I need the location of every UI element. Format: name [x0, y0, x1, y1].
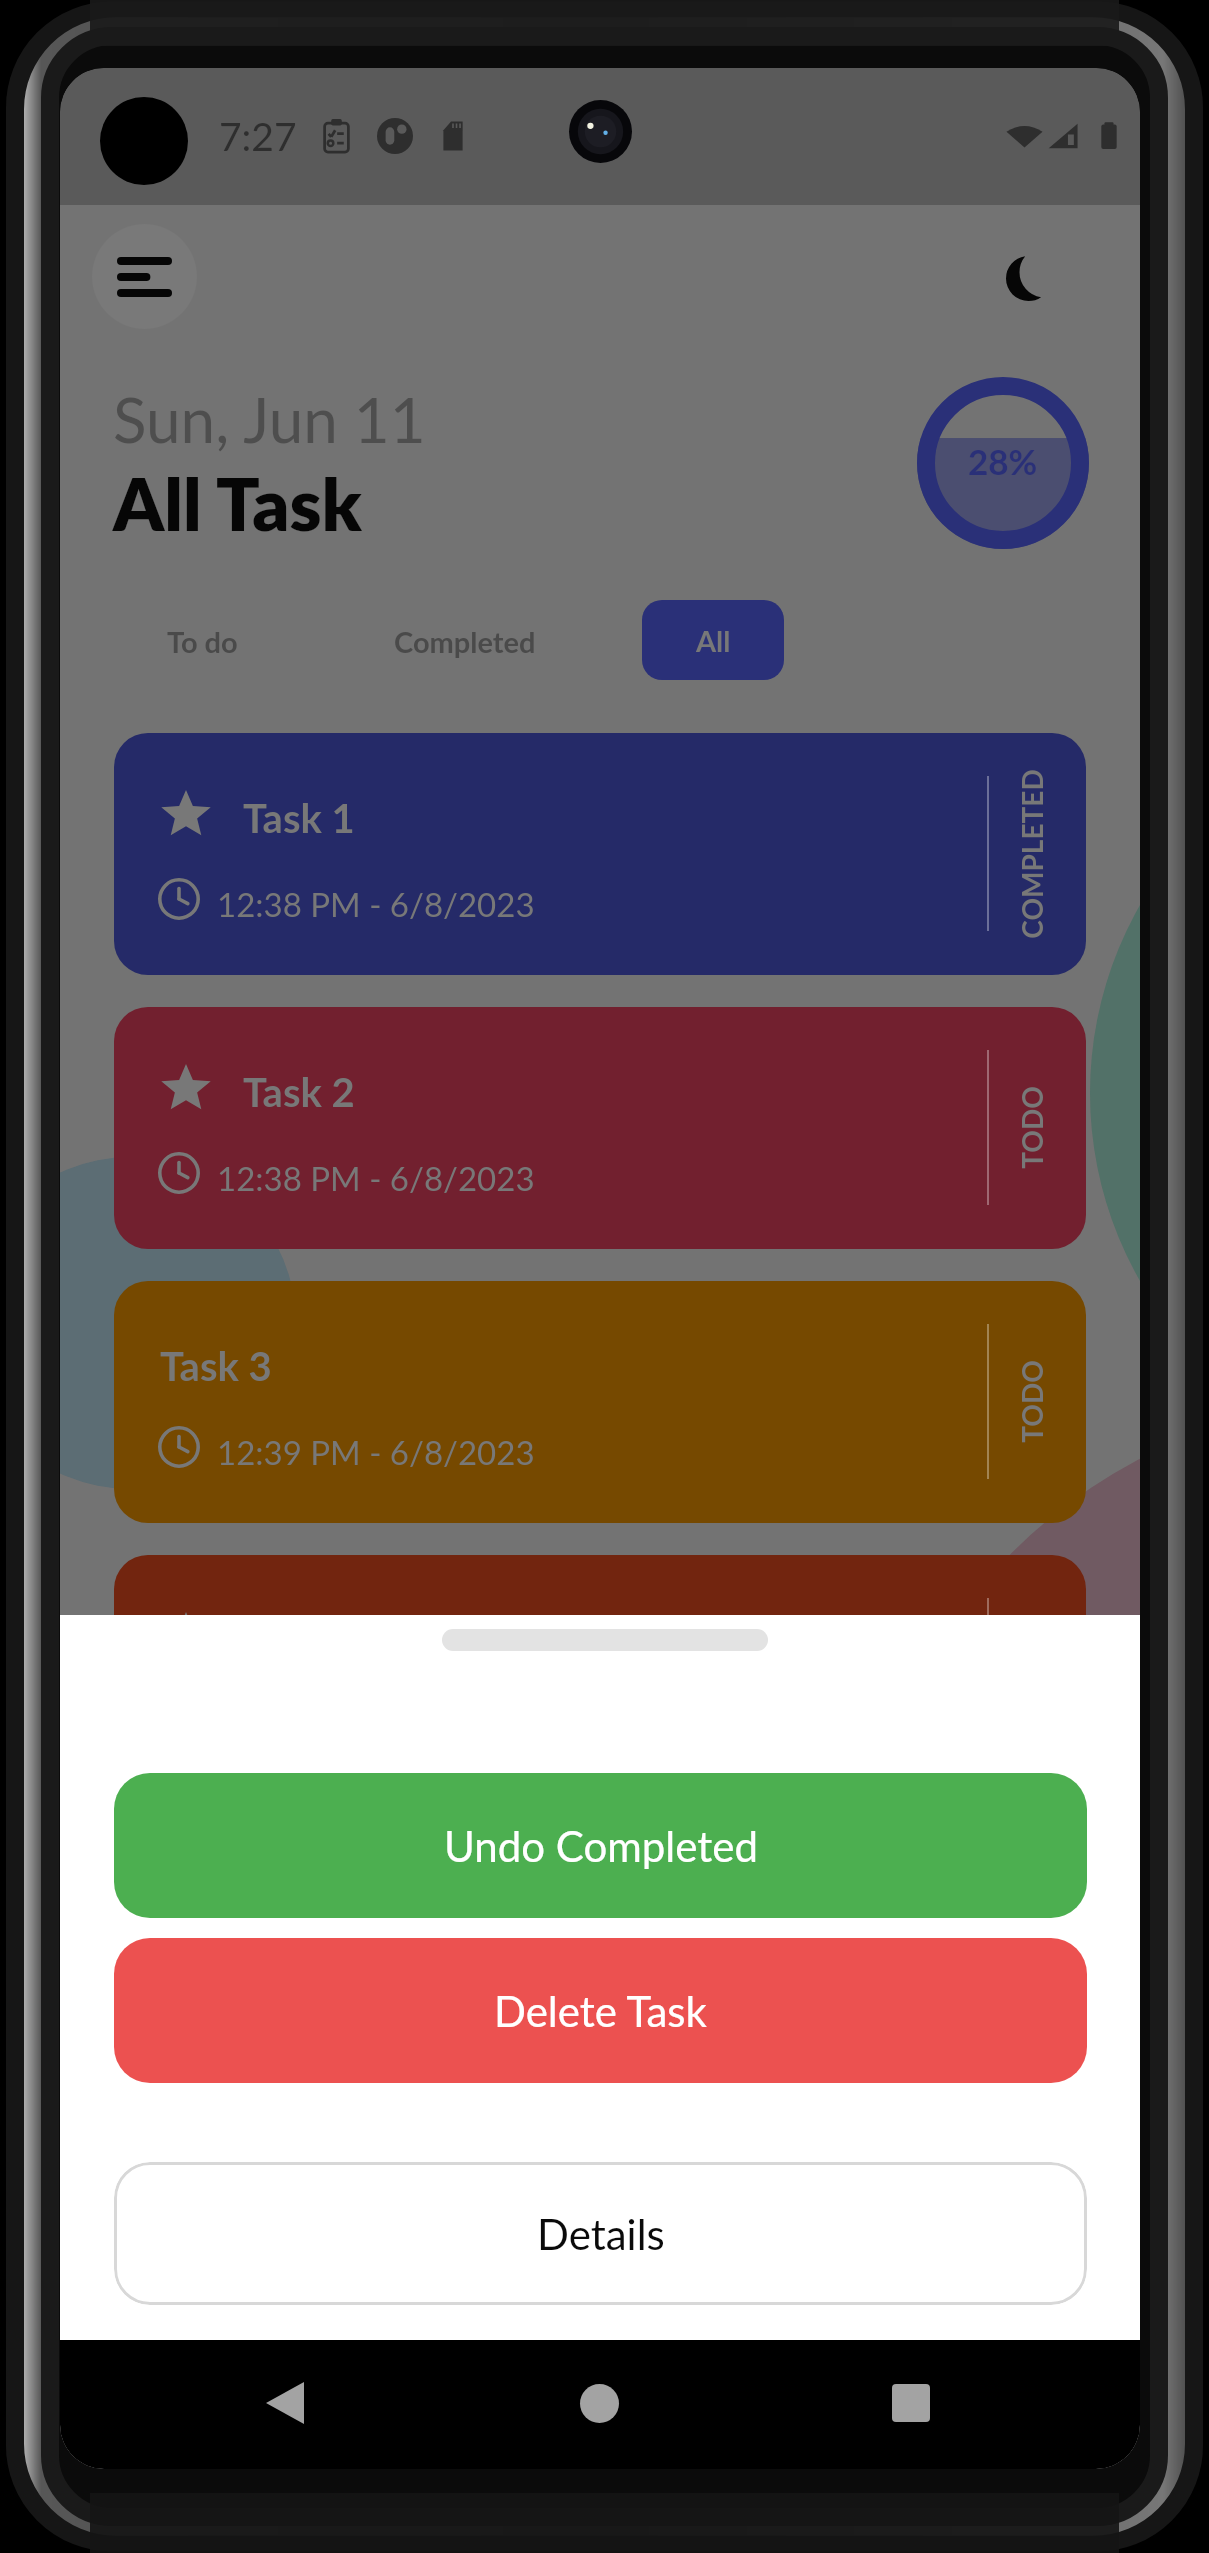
staticText: Delete Task [494, 1986, 707, 2036]
staticText: Task 1 [243, 794, 355, 842]
staticText: Sun, Jun 11 [113, 382, 426, 456]
staticText: 12:38 PM - 6/8/2023 [217, 884, 535, 924]
button[interactable]: Undo Completed [114, 1773, 1087, 1918]
staticText: All [696, 623, 731, 658]
button[interactable]: Completed [372, 602, 558, 681]
staticText: Undo Completed [444, 1821, 758, 1871]
staticText: TODO [1015, 1086, 1049, 1169]
staticText: 7:27 [219, 113, 297, 160]
staticText: 12:39 PM - 6/8/2023 [217, 1432, 535, 1472]
button[interactable]: Dark mode [982, 232, 1074, 324]
button[interactable]: Menu [92, 224, 197, 329]
button[interactable]: To do [145, 602, 260, 681]
button[interactable]: Back [225, 2343, 345, 2463]
button[interactable]: Task 1 [114, 733, 1086, 975]
staticText: To do [167, 624, 238, 659]
staticText: 28% [968, 440, 1038, 482]
button[interactable]: Task 4 [114, 1555, 1086, 1797]
staticText: Task 2 [243, 1068, 355, 1116]
staticText: Task 3 [160, 1342, 272, 1390]
button[interactable]: Delete Task [114, 1938, 1087, 2083]
staticText: Completed [394, 624, 536, 659]
staticText: All Task [113, 460, 362, 546]
staticText: Details [537, 2209, 665, 2259]
button[interactable]: Recents [851, 2343, 971, 2463]
staticText: COMPLETED [1015, 769, 1049, 939]
button[interactable]: Task 2 [114, 1007, 1086, 1249]
button[interactable]: All [642, 600, 784, 680]
staticText: TODO [1015, 1360, 1049, 1443]
staticText: 12:38 PM - 6/8/2023 [217, 1158, 535, 1198]
button[interactable]: Task 3 [114, 1281, 1086, 1523]
button[interactable]: Home [539, 2343, 659, 2463]
button[interactable]: Details [114, 2162, 1087, 2305]
